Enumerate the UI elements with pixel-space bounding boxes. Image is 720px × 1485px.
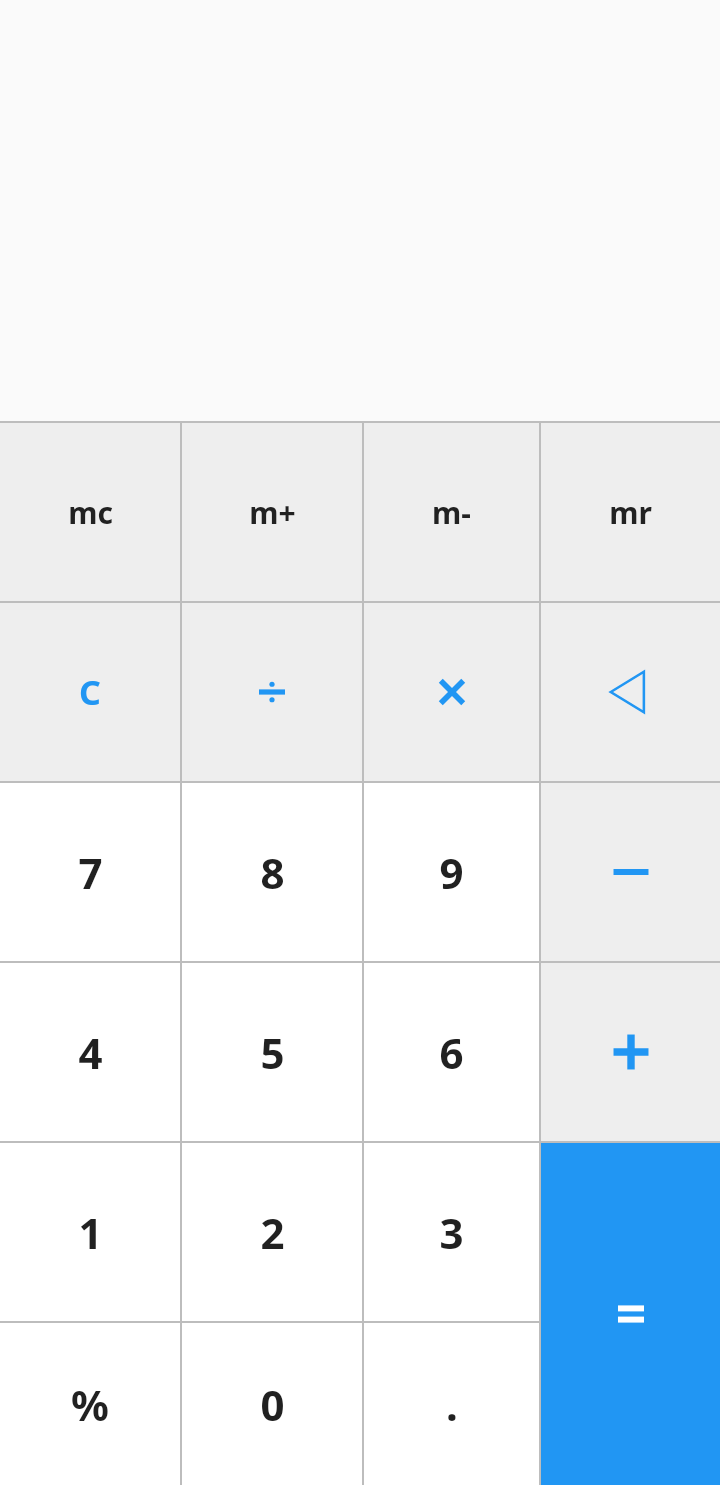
staticText: mr xyxy=(609,492,652,533)
staticText: 3 xyxy=(439,1204,464,1261)
button[interactable]: Equals xyxy=(541,1143,720,1485)
button[interactable]: mr xyxy=(541,423,720,601)
button[interactable]: 1 xyxy=(0,1143,180,1321)
staticText: 4 xyxy=(78,1024,103,1081)
staticText: . xyxy=(446,1376,458,1433)
staticText: C xyxy=(79,669,101,715)
button[interactable]: 7 xyxy=(0,783,180,961)
button[interactable]: 4 xyxy=(0,963,180,1141)
button[interactable]: 3 xyxy=(364,1143,539,1321)
staticText: 9 xyxy=(439,844,464,901)
button[interactable]: 0 xyxy=(182,1323,362,1485)
staticText: 5 xyxy=(260,1024,285,1081)
staticText: m- xyxy=(432,492,471,533)
staticText: mc xyxy=(68,492,113,533)
button[interactable]: Backspace xyxy=(541,603,720,781)
staticText: 0 xyxy=(260,1376,285,1433)
button[interactable]: Plus xyxy=(541,963,720,1141)
staticText: 7 xyxy=(78,844,103,901)
button[interactable]: 8 xyxy=(182,783,362,961)
button[interactable]: % xyxy=(0,1323,180,1485)
button[interactable]: 2 xyxy=(182,1143,362,1321)
staticText: 8 xyxy=(260,844,285,901)
staticText: 6 xyxy=(439,1024,464,1081)
staticText: % xyxy=(71,1376,109,1433)
button[interactable]: m- xyxy=(364,423,539,601)
button[interactable]: C xyxy=(0,603,180,781)
button[interactable]: m+ xyxy=(182,423,362,601)
button[interactable]: Minus xyxy=(541,783,720,961)
staticText: 1 xyxy=(78,1204,103,1261)
button[interactable]: Multiply xyxy=(364,603,539,781)
staticText: 2 xyxy=(260,1204,285,1261)
button[interactable]: 5 xyxy=(182,963,362,1141)
button[interactable]: 9 xyxy=(364,783,539,961)
staticText: m+ xyxy=(249,492,296,533)
button[interactable]: 6 xyxy=(364,963,539,1141)
button[interactable]: mc xyxy=(0,423,180,601)
button[interactable]: Divide xyxy=(182,603,362,781)
button[interactable]: . xyxy=(364,1323,539,1485)
